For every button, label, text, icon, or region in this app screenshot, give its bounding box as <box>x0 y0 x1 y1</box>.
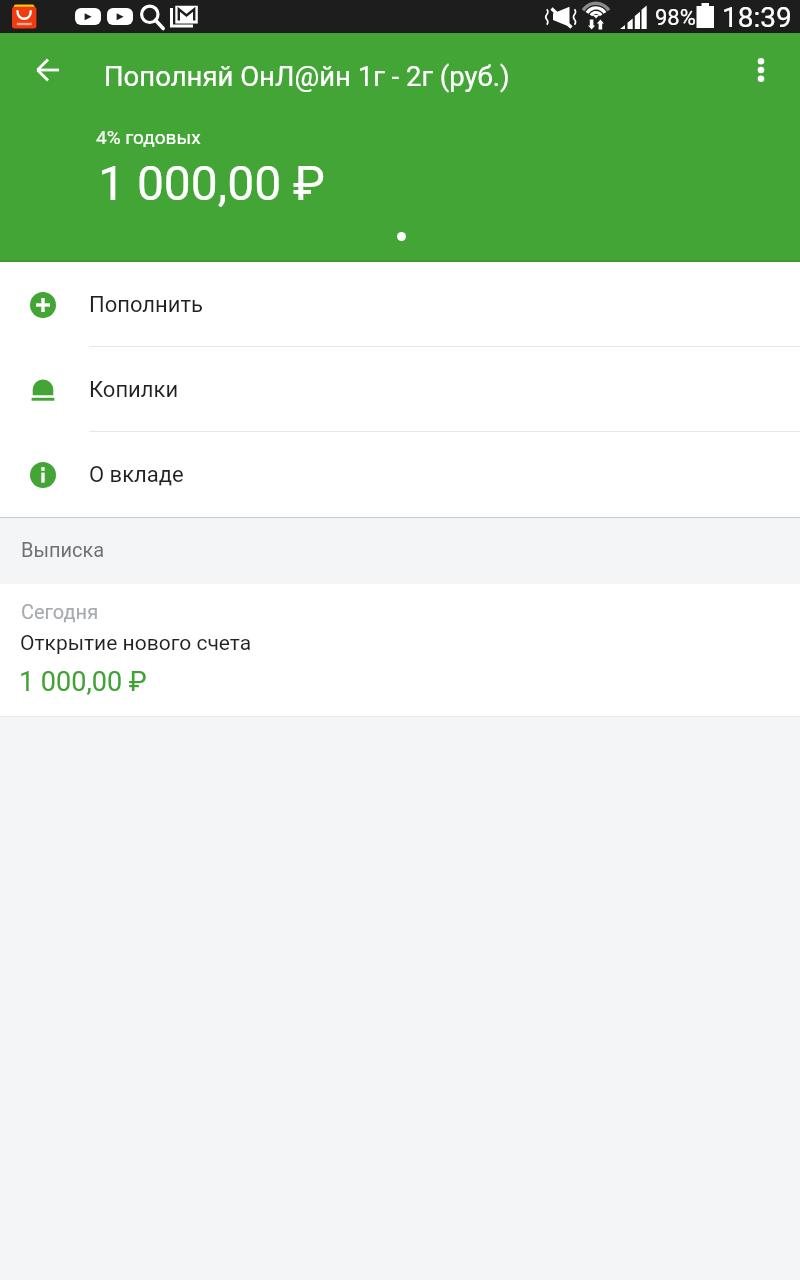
staticText: Выписка <box>21 538 105 561</box>
staticText: 18:39 <box>722 1 792 34</box>
staticText: 1 000,00 ₽ <box>98 155 325 211</box>
button[interactable]: More options <box>733 42 789 98</box>
staticText: Сегодня <box>21 600 99 623</box>
staticText: 1 000,00 ₽ <box>19 666 147 698</box>
button[interactable]: Сегодня <box>0 584 800 717</box>
staticText: Копилки <box>89 377 179 403</box>
staticText: О вкладе <box>89 462 184 488</box>
staticText: 4% годовых <box>96 126 201 148</box>
staticText: Пополнить <box>89 292 203 318</box>
staticText: Открытие нового счета <box>20 631 252 656</box>
button[interactable]: О вкладе <box>0 432 800 517</box>
button[interactable]: Back <box>20 42 76 98</box>
button[interactable]: Копилки <box>0 347 800 432</box>
button[interactable]: Пополнить <box>0 262 800 347</box>
staticText: 98% <box>655 5 696 31</box>
staticText: Пополняй ОнЛ@йн 1г - 2г (руб.) <box>104 60 510 92</box>
